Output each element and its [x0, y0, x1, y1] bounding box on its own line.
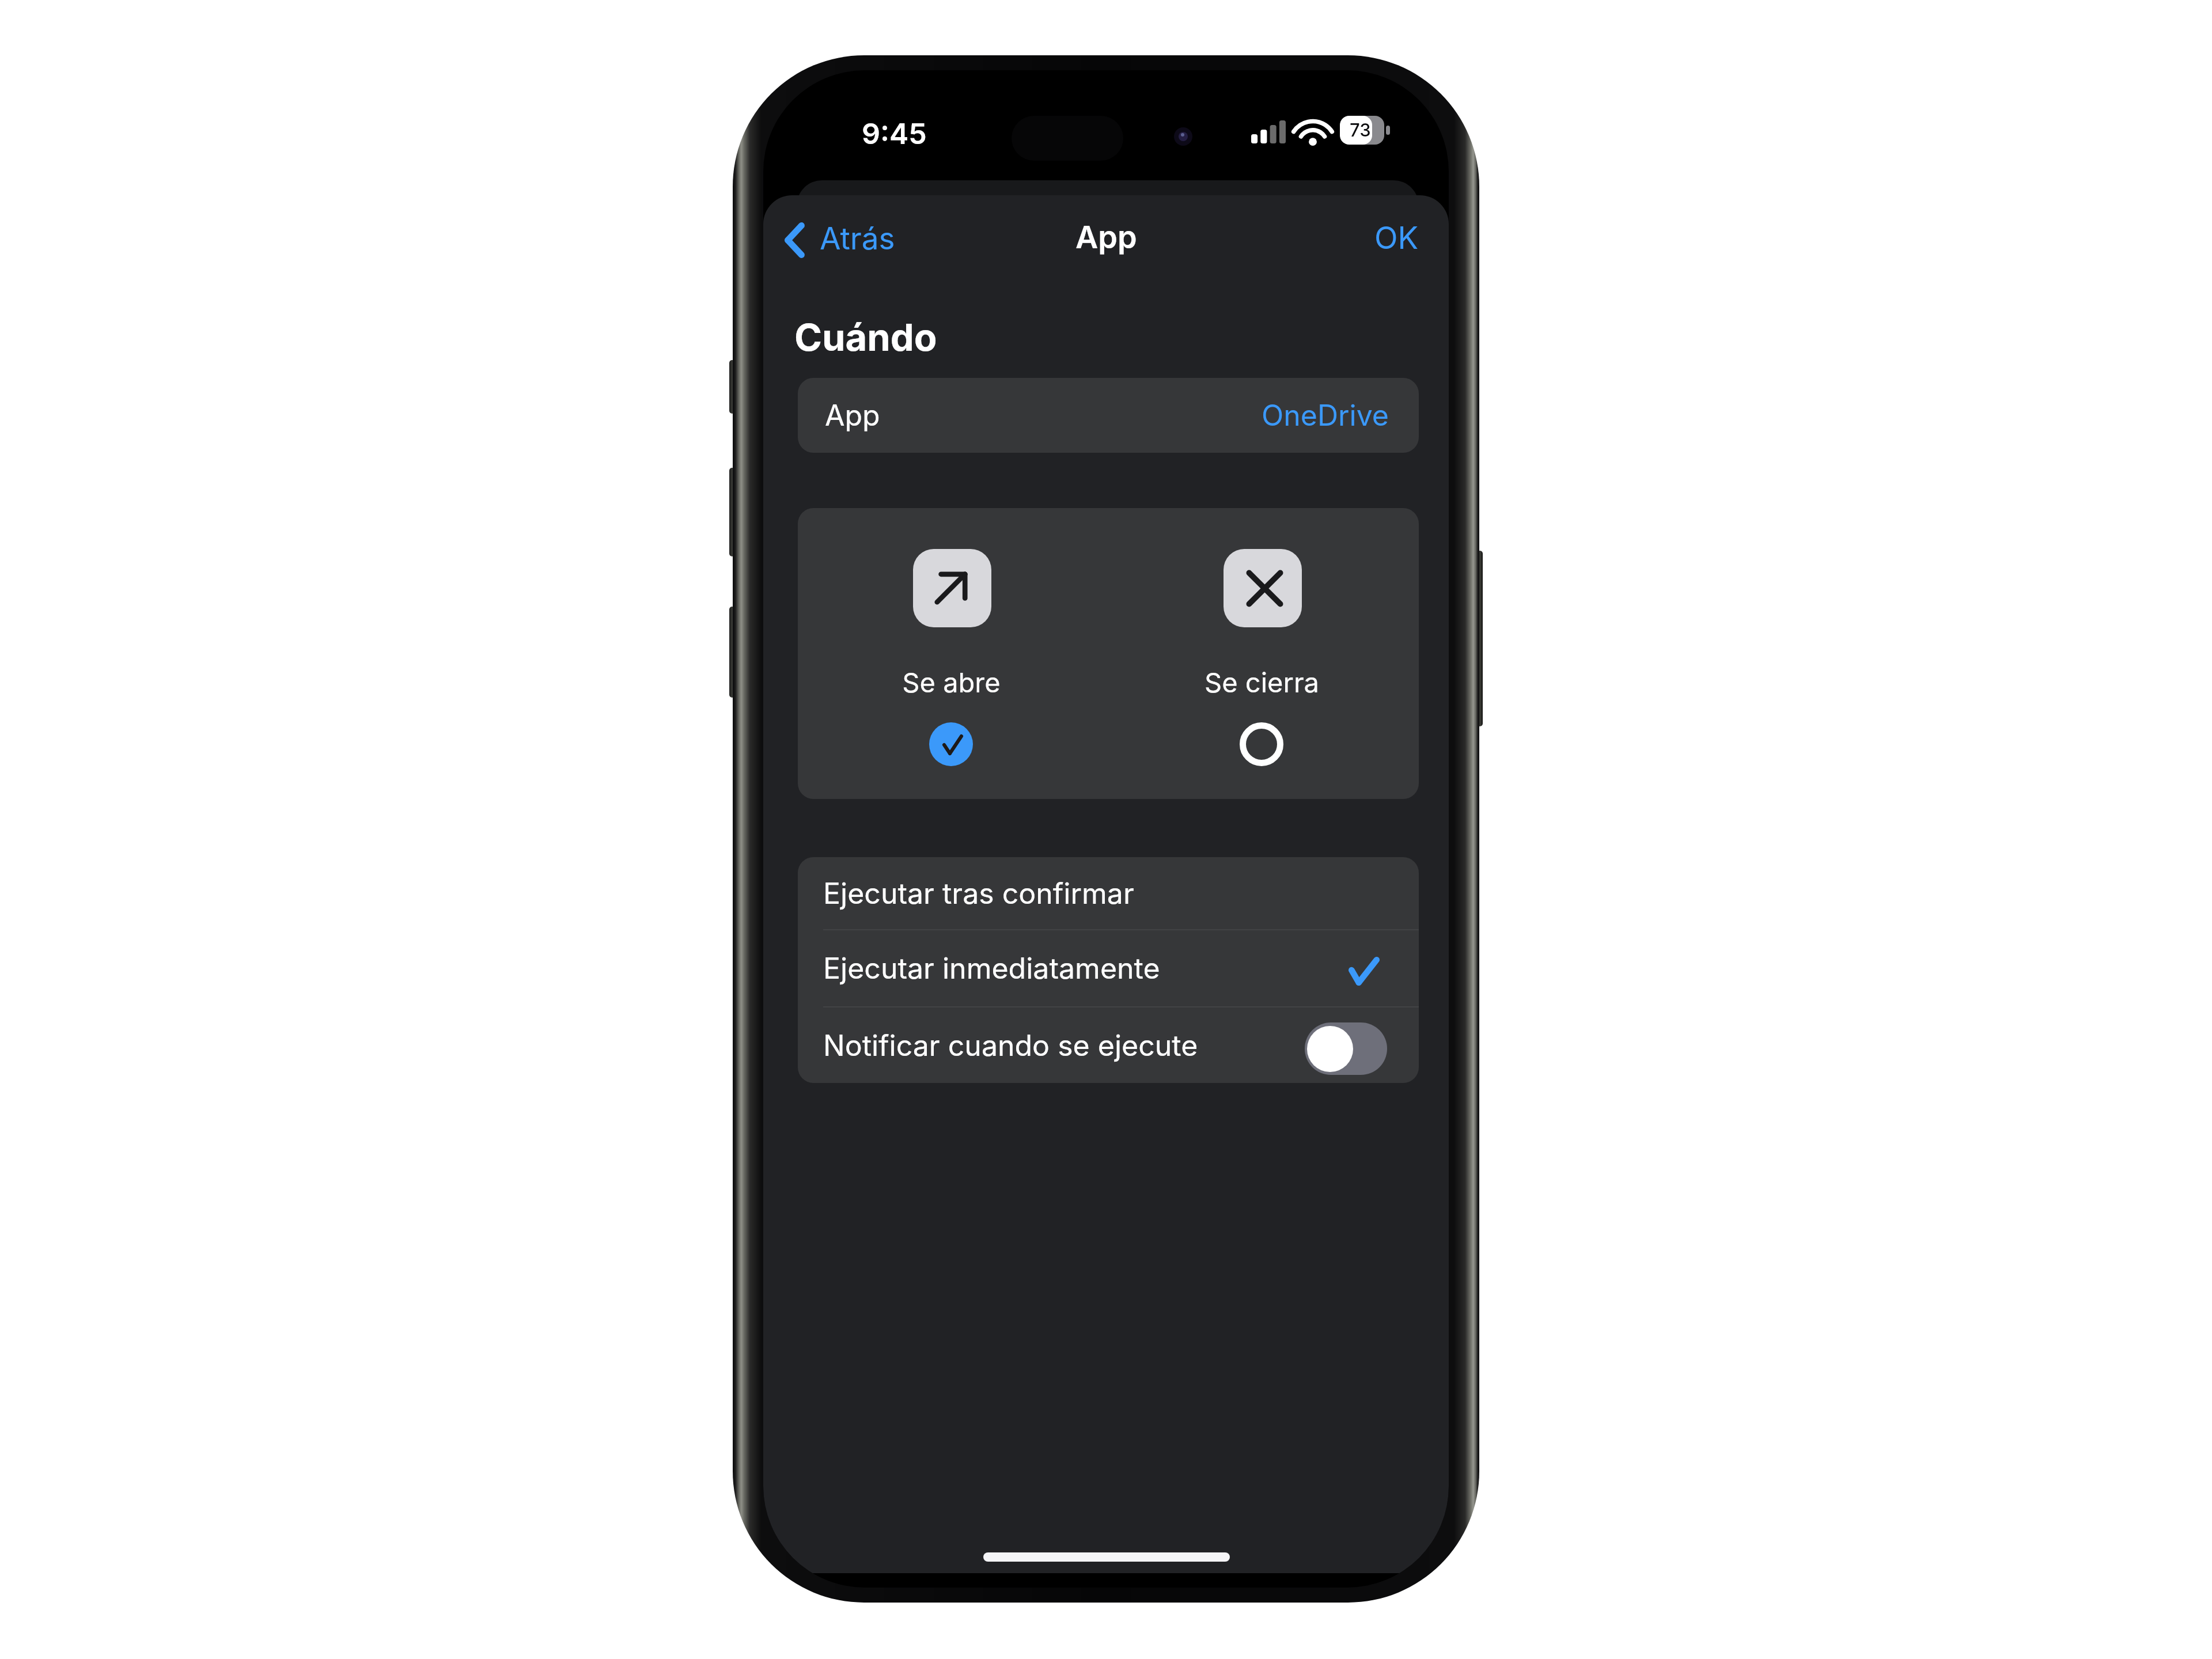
staticText: 9:45	[862, 116, 927, 151]
staticText: OneDrive	[1262, 398, 1389, 433]
staticText: Se cierra	[1205, 666, 1319, 699]
staticText: App	[825, 398, 880, 433]
staticText: Se abre	[902, 666, 1001, 699]
button[interactable]: Ejecutar inmediatamente	[798, 930, 1419, 1006]
staticText: Notificar cuando se ejecute	[823, 1028, 1198, 1063]
other: Se cierra	[1224, 549, 1302, 627]
button[interactable]: Atrás	[775, 211, 904, 269]
button[interactable]: OK	[1365, 211, 1428, 269]
button[interactable]: Se abre	[798, 508, 1108, 766]
staticText: OK	[1374, 219, 1419, 256]
staticText: App	[1075, 218, 1137, 256]
button[interactable]: Notificar cuando se ejecute	[1305, 1022, 1387, 1075]
staticText: Atrás	[820, 220, 895, 257]
button[interactable]: Se cierra	[1108, 508, 1419, 766]
staticText: 73	[1350, 119, 1371, 141]
staticText: Cuándo	[794, 315, 937, 360]
staticText: Ejecutar inmediatamente	[823, 951, 1160, 986]
button[interactable]: Ejecutar tras confirmar	[798, 857, 1419, 929]
staticText: Ejecutar tras confirmar	[823, 876, 1134, 911]
other: Se abre	[913, 549, 991, 627]
button[interactable]: App	[798, 378, 1419, 453]
button[interactable]: Notificar cuando se ejecute	[798, 1007, 1419, 1083]
